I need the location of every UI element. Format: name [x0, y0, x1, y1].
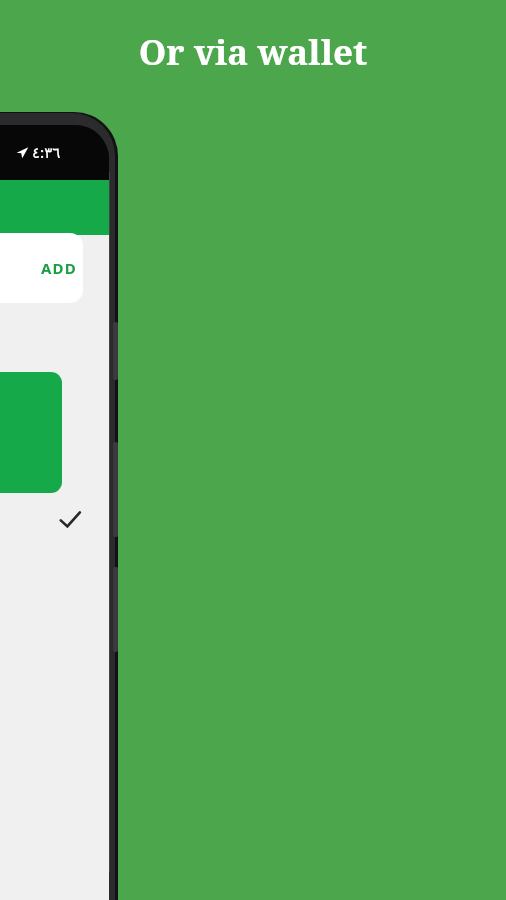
staticText: ADD: [41, 258, 77, 278]
other: Selected: [59, 510, 81, 530]
button[interactable]: ONLINE: [0, 372, 62, 493]
button[interactable]: ADD: [0, 233, 83, 303]
staticText: Or via wallet: [0, 28, 506, 80]
staticText: ٤:٣٦: [32, 142, 61, 162]
